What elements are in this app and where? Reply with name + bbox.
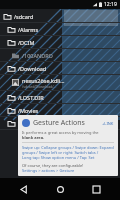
staticText: Long tap: Show option menu / Tap: Set	[22, 155, 95, 160]
button[interactable]: /DCIM	[0, 36, 120, 48]
button[interactable]: /sdcard	[0, 10, 120, 22]
staticText: Settings > actions > Gesture	[22, 168, 75, 173]
staticText: /sdcard	[14, 13, 34, 20]
staticText: /sdcard/Download/...	[22, 84, 57, 89]
button[interactable]: nexus2öse.kdli...	[0, 75, 120, 90]
staticText: /DCIM	[18, 39, 35, 46]
staticText: /LOST.DIR	[18, 94, 44, 101]
button[interactable]: /100ANDRO	[0, 49, 120, 61]
staticText: /Alarms	[18, 26, 39, 33]
button[interactable]: /Movies	[0, 104, 120, 116]
staticText: It performs a great access by moving the…	[22, 130, 114, 135]
staticText: /Movies	[18, 107, 39, 114]
staticText: 12:19	[104, 1, 117, 8]
button[interactable]: /LOST.DIR	[0, 91, 120, 103]
other: App icon	[22, 119, 30, 127]
staticText: blank area.	[22, 135, 45, 140]
button[interactable]: Back	[12, 178, 36, 200]
staticText: Swipe up: Collapse groups / Swipe down: …	[22, 145, 114, 150]
staticText: +LINK	[102, 121, 114, 126]
staticText: /Music	[18, 120, 36, 127]
staticText: /Download	[18, 65, 47, 72]
staticText: Of course, they are configurable!	[22, 163, 84, 168]
button[interactable]: App icon	[18, 115, 118, 176]
button[interactable]: Recent apps	[84, 178, 108, 200]
button[interactable]: /Alarms	[0, 23, 120, 35]
staticText: nexus2öse.kdli...	[22, 77, 65, 84]
staticText: groups / Swipe left or right: Switch tab…	[22, 150, 99, 155]
staticText: Gesture Actions	[33, 118, 85, 128]
button[interactable]: /Music	[0, 117, 120, 129]
staticText: /100ANDRO	[22, 52, 53, 59]
button[interactable]: Home	[48, 178, 72, 200]
button[interactable]: /Download	[0, 62, 120, 74]
